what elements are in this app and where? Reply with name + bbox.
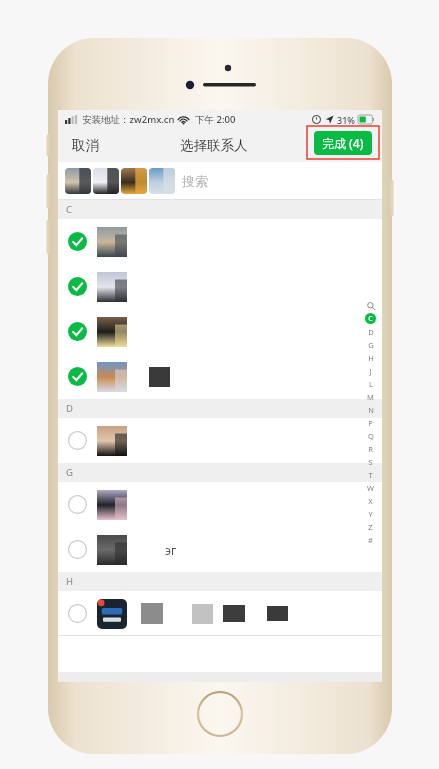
button[interactable] xyxy=(58,219,382,264)
staticText: L xyxy=(369,379,373,389)
staticText: 31% xyxy=(337,114,355,126)
button[interactable]: 搜索 xyxy=(58,162,382,200)
button[interactable]: 完成 (4) xyxy=(314,131,372,155)
button[interactable] xyxy=(58,418,382,463)
staticText: D xyxy=(368,327,374,337)
staticText: 下午 2:00 xyxy=(195,113,236,126)
staticText: 安装地址：zw2mx.cn xyxy=(82,113,175,126)
staticText: P xyxy=(368,418,373,428)
staticText: Q xyxy=(368,431,374,441)
staticText: C xyxy=(368,314,373,324)
staticText: X xyxy=(368,496,373,506)
button[interactable] xyxy=(58,591,382,636)
staticText: Y xyxy=(368,509,373,519)
button[interactable] xyxy=(58,309,382,354)
staticText: M xyxy=(367,392,374,402)
staticText: 完成 (4) xyxy=(322,135,364,151)
staticText: Z xyxy=(368,522,373,532)
staticText: эг xyxy=(165,542,177,558)
staticText: T xyxy=(368,470,373,480)
button[interactable]: 取消 xyxy=(64,133,107,158)
staticText: 取消 xyxy=(72,137,99,154)
staticText: H xyxy=(368,353,374,363)
button[interactable]: эг xyxy=(58,527,382,572)
staticText: D xyxy=(66,402,73,415)
staticText: H xyxy=(66,575,74,588)
button[interactable] xyxy=(58,354,382,399)
staticText: N xyxy=(368,405,374,415)
button[interactable] xyxy=(58,264,382,309)
button[interactable] xyxy=(58,482,382,527)
staticText: C xyxy=(66,203,73,216)
button[interactable]: Home xyxy=(196,690,244,738)
button[interactable]: Alphabet index xyxy=(363,299,378,546)
staticText: 选择联系人 xyxy=(180,137,248,154)
staticText: # xyxy=(368,535,373,545)
staticText: W xyxy=(367,483,374,493)
staticText: 搜索 xyxy=(182,173,208,189)
staticText: R xyxy=(368,444,373,454)
staticText: G xyxy=(368,340,374,350)
staticText: G xyxy=(66,466,73,479)
staticText: J xyxy=(369,366,372,376)
staticText: S xyxy=(368,457,373,467)
